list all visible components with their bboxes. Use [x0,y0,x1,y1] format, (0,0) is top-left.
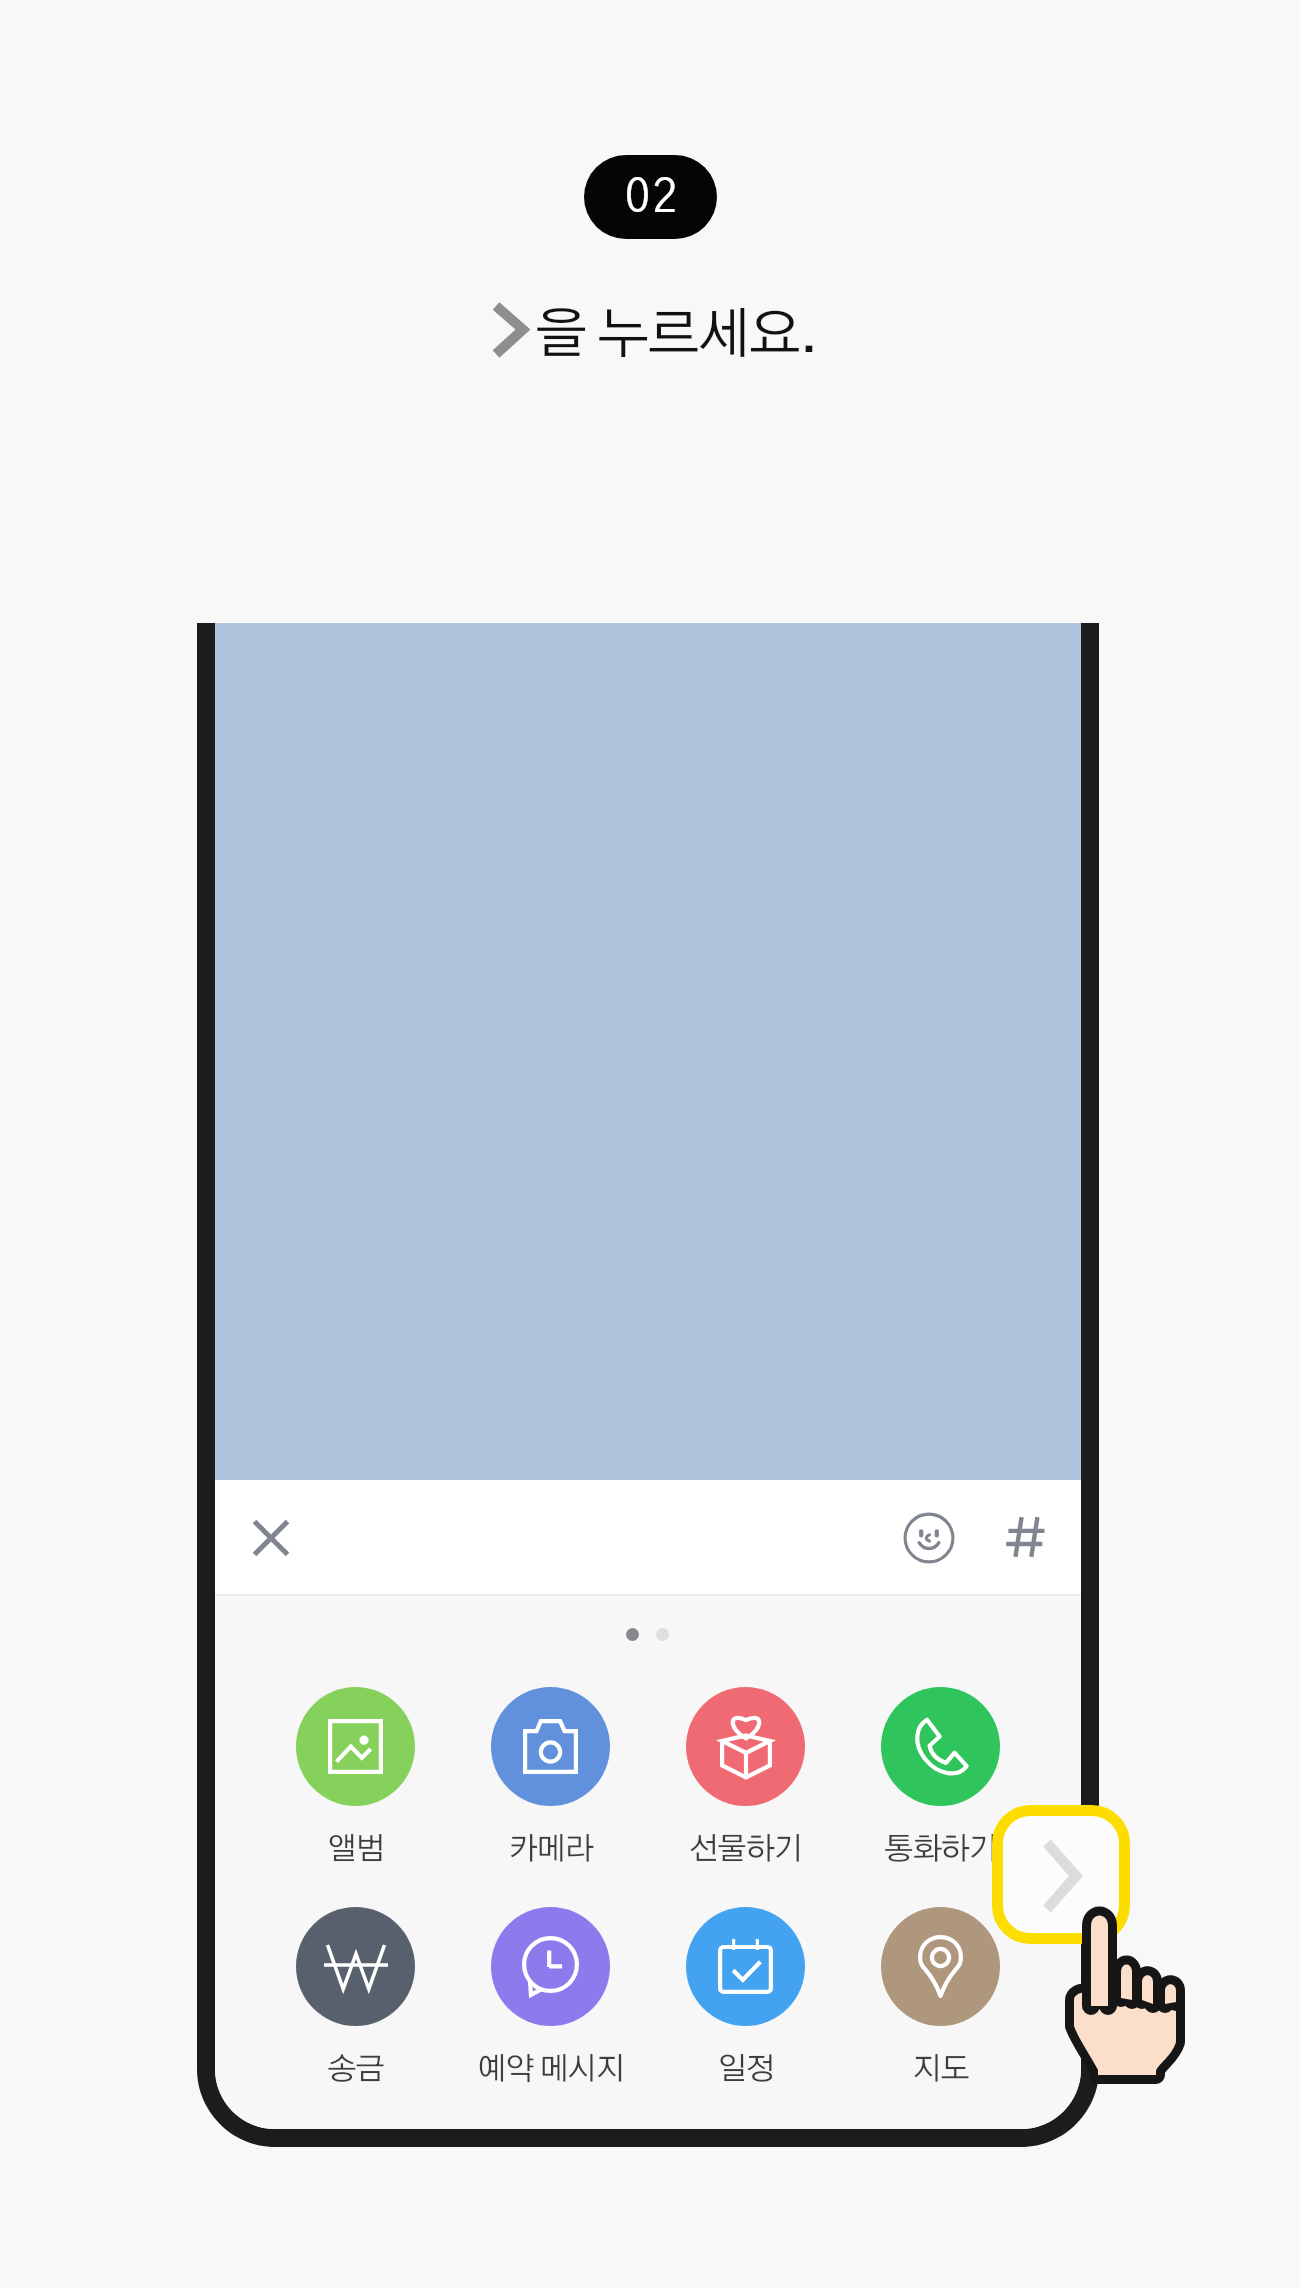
staticText: 일정 [717,2054,774,2085]
button[interactable]: 지도 [843,1907,1038,2085]
staticText: 카메라 [508,1834,593,1865]
staticText: 예약 메시지 [477,2054,624,2085]
button[interactable]: Close [246,1513,296,1563]
button[interactable]: Emoticon [903,1512,955,1564]
button[interactable]: 카메라 [453,1687,648,1865]
staticText: 을 누르세요. [535,308,817,363]
staticText: 선물하기 [689,1834,802,1865]
button[interactable]: 예약 메시지 [453,1907,648,2085]
staticText: 앨범 [327,1834,384,1865]
staticText: 송금 [327,2054,384,2085]
button[interactable]: 선물하기 [648,1687,843,1865]
button[interactable]: More attachments [992,1805,1130,1944]
button[interactable]: 송금 [258,1907,453,2085]
button[interactable]: Hashtag [1004,1515,1048,1559]
button[interactable]: 앨범 [258,1687,453,1865]
staticText: 통화하기 [884,1834,997,1865]
staticText: 02 [625,176,681,221]
staticText: 지도 [912,2054,969,2085]
button[interactable]: 일정 [648,1907,843,2085]
button[interactable]: 통화하기 [843,1687,1038,1865]
